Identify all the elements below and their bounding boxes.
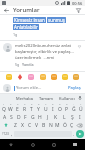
button[interactable]: U <box>42 105 49 113</box>
staticText: Yorum ekle... <box>16 85 42 91</box>
button[interactable]: Keyboard <box>64 139 85 150</box>
button[interactable]: Emoji <box>5 73 13 81</box>
staticText: R <box>23 106 27 113</box>
button[interactable]: Tamam <box>35 96 56 101</box>
staticText: L <box>63 114 66 121</box>
button[interactable]: H <box>36 113 44 121</box>
button[interactable]: J <box>44 113 52 121</box>
button[interactable]: X <box>19 121 26 129</box>
button[interactable]: Emoji <box>39 73 47 81</box>
staticText: O <box>58 106 62 113</box>
button[interactable]: I <box>76 113 84 121</box>
staticText: Kullanıcı <box>59 96 75 101</box>
staticText: Z <box>14 122 17 129</box>
button[interactable]: T <box>28 105 35 113</box>
staticText: 8 <box>52 102 54 105</box>
button[interactable]: L <box>60 113 68 121</box>
staticText: 00:56 <box>72 1 83 6</box>
staticText: Paylaş <box>68 85 81 91</box>
staticText: ?123 <box>2 132 9 136</box>
button[interactable]: W <box>7 105 14 113</box>
button[interactable]: Send <box>76 130 84 138</box>
staticText: 1g <box>13 32 18 37</box>
button[interactable]: I <box>49 105 56 113</box>
staticText: P <box>65 106 69 113</box>
button[interactable]: S <box>8 113 15 121</box>
button[interactable]: B <box>40 121 47 129</box>
staticText: + <box>80 102 82 105</box>
staticText: G <box>31 114 35 121</box>
button[interactable]: F <box>22 113 29 121</box>
button[interactable]: Kullanıcı <box>56 96 77 101</box>
staticText: Tamam <box>39 96 53 101</box>
button[interactable]: Filter <box>75 7 82 14</box>
button[interactable]: Paylaş <box>67 84 82 92</box>
button[interactable]: Ü <box>77 105 84 113</box>
staticText: Ş <box>71 114 74 121</box>
staticText: 5g <box>15 62 20 67</box>
button[interactable]: A <box>1 113 8 121</box>
button[interactable]: ?123 <box>1 129 10 138</box>
button[interactable]: M <box>54 121 61 129</box>
button[interactable]: Home <box>22 139 43 150</box>
button[interactable]: Merhaba <box>14 96 35 101</box>
button[interactable]: Emoji <box>61 73 69 81</box>
staticText: 5 <box>31 102 33 105</box>
button[interactable]: Back <box>3 7 10 14</box>
button[interactable]: Back <box>0 139 22 150</box>
button[interactable]: Like <box>76 43 82 49</box>
button[interactable]: Voice input <box>77 95 83 101</box>
button[interactable]: G <box>29 113 36 121</box>
staticText: Anlatılabilir <box>14 24 38 30</box>
staticText: . <box>73 131 75 137</box>
staticText: H <box>38 114 42 121</box>
button[interactable]: Backspace <box>75 121 84 129</box>
button[interactable]: Ç <box>68 121 75 129</box>
button[interactable]: Ş <box>68 113 76 121</box>
staticText: Q <box>2 106 6 113</box>
staticText: 0 <box>66 102 68 105</box>
staticText: Yorumlar <box>13 6 40 14</box>
button[interactable]: R <box>21 105 28 113</box>
button[interactable]: Emoji <box>16 73 24 81</box>
button[interactable]: Emoji <box>50 73 58 81</box>
button[interactable]: Ö <box>61 121 68 129</box>
button[interactable]: V <box>33 121 40 129</box>
staticText: Ö <box>63 122 67 129</box>
button[interactable]: Emoji <box>27 73 35 81</box>
button[interactable]: Shift <box>1 121 11 129</box>
button[interactable]: Period <box>72 129 76 138</box>
button[interactable]: D <box>15 113 22 121</box>
staticText: Y <box>37 106 40 113</box>
button[interactable]: Ğ <box>70 105 77 113</box>
button[interactable]: Z <box>11 121 19 129</box>
staticText: I <box>52 106 54 113</box>
staticText: 2 <box>10 102 12 105</box>
button[interactable]: Yorum ekle... <box>14 85 67 91</box>
staticText: 3 <box>17 102 19 105</box>
staticText: W <box>8 106 13 113</box>
staticText: N <box>49 122 53 129</box>
staticText: Ç <box>70 122 74 129</box>
staticText: Ğ <box>72 106 76 113</box>
button[interactable]: Emoji <box>72 73 80 81</box>
button[interactable]: E <box>14 105 21 113</box>
staticText: 4 <box>24 102 26 105</box>
staticText: 6 <box>38 102 40 105</box>
button[interactable]: P <box>63 105 70 113</box>
button[interactable]: Y <box>35 105 42 113</box>
button[interactable]: C <box>26 121 33 129</box>
staticText: F <box>24 114 27 121</box>
staticText: - <box>73 102 74 105</box>
button[interactable]: Recents <box>43 139 64 150</box>
button[interactable]: Comma <box>10 129 14 138</box>
button[interactable]: Q <box>1 105 7 113</box>
staticText: Merhaba <box>16 96 33 101</box>
staticText: , <box>11 131 13 137</box>
button[interactable]: O <box>56 105 63 113</box>
button[interactable]: melis2020nbunuhenüz anlat <box>0 41 85 69</box>
button[interactable]: N <box>47 121 54 129</box>
button[interactable]: K <box>52 113 60 121</box>
staticText: B <box>42 122 46 129</box>
